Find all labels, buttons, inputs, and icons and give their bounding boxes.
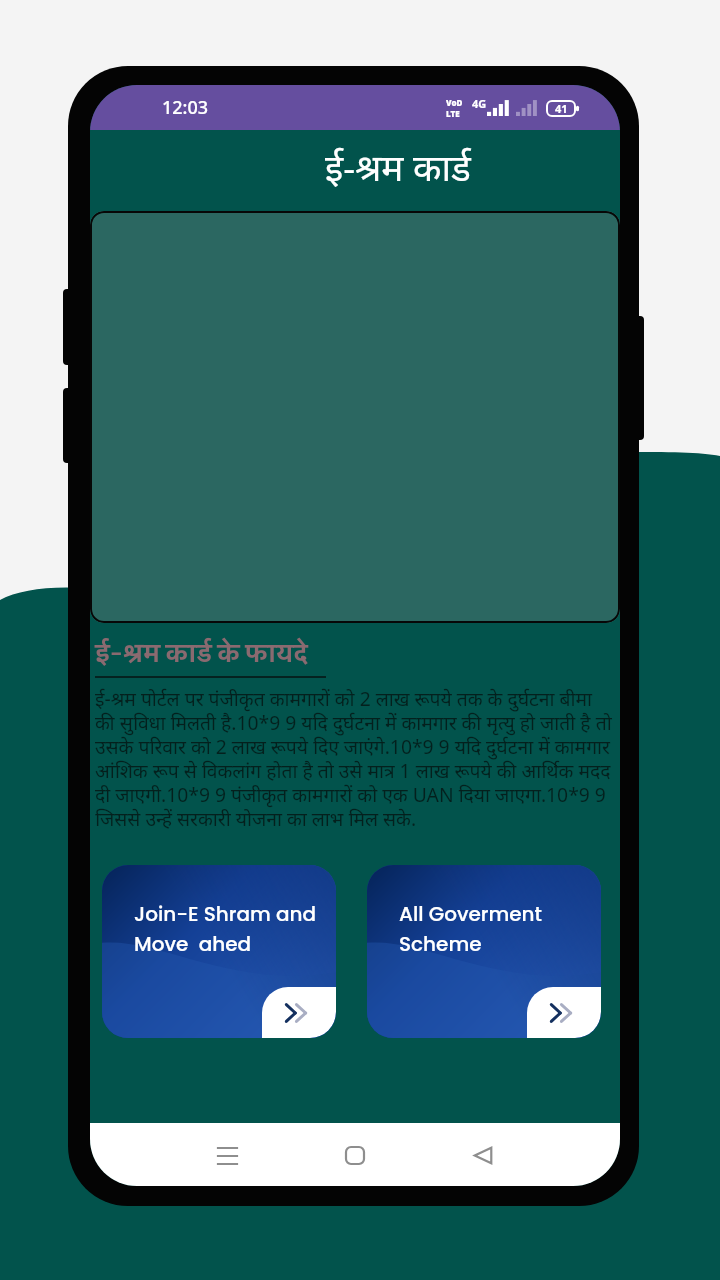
staticText: 12:03 — [162, 95, 209, 120]
button[interactable]: All Goverment Scheme — [367, 865, 601, 1038]
button[interactable]: Recents — [203, 1131, 251, 1179]
staticText: All Goverment Scheme — [399, 900, 542, 958]
staticText: 4G — [472, 96, 487, 111]
staticText: LTE — [446, 108, 460, 119]
staticText: Join-E Shram and Move ahed — [134, 900, 317, 958]
staticText: ई-श्रम पोर्टल पर पंजीकृत कामगारों को 2 ल… — [95, 685, 615, 832]
button[interactable]: Back — [459, 1131, 507, 1179]
staticText: 41 — [555, 101, 568, 116]
staticText: ई-श्रम कार्ड — [325, 141, 471, 191]
button[interactable]: Open — [527, 987, 601, 1038]
button[interactable]: Join-E Shram and Move ahed — [102, 865, 336, 1038]
button[interactable]: Open — [262, 987, 336, 1038]
button[interactable]: Home — [331, 1131, 379, 1179]
staticText: VoD — [446, 97, 463, 108]
staticText: ई-श्रम कार्ड के फायदे — [95, 633, 308, 674]
